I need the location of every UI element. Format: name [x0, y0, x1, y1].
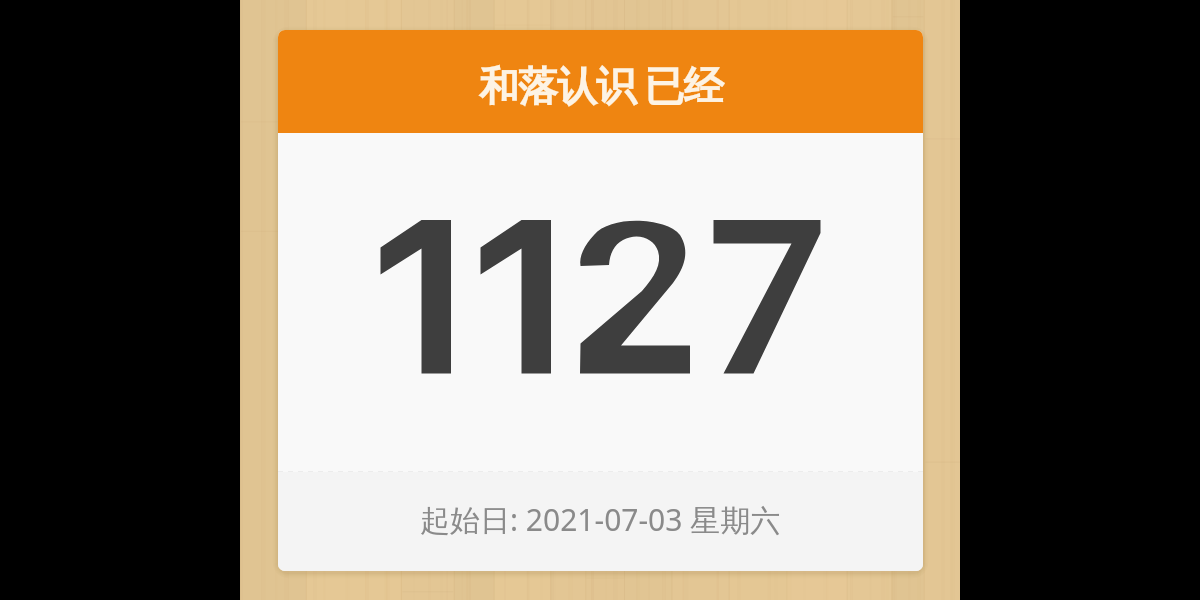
staticText: 起始日: 2021-07-03 星期六 — [420, 499, 781, 540]
staticText: 和落认识 已经 — [479, 57, 723, 112]
button[interactable]: 和落认识 已经 — [278, 30, 923, 133]
button[interactable]: 起始日: 2021-07-03 星期六 — [278, 472, 923, 571]
button[interactable]: 1127 days — [278, 133, 923, 471]
